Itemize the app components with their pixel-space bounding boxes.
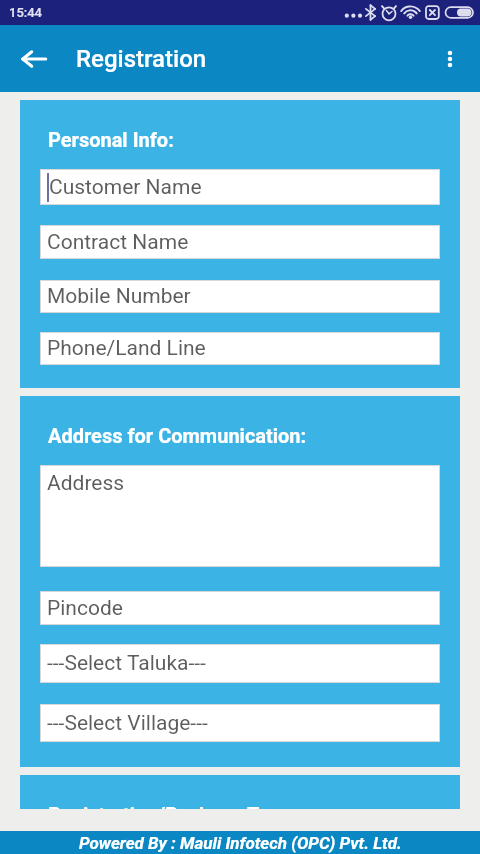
staticText: Personal Info: bbox=[48, 128, 174, 151]
button[interactable]: Address bbox=[40, 465, 440, 567]
staticText: Contract Name bbox=[47, 230, 189, 255]
staticText: Powered By : Mauli Infotech (OPC) Pvt. L… bbox=[79, 833, 402, 853]
staticText: Registration bbox=[76, 45, 207, 73]
button[interactable]: ---Select Taluka--- bbox=[40, 644, 440, 683]
button[interactable]: Phone/Land Line bbox=[40, 332, 440, 365]
staticText: Phone/Land Line bbox=[47, 336, 206, 361]
button[interactable]: Customer Name bbox=[40, 169, 440, 205]
staticText: ---Select Village--- bbox=[47, 711, 208, 736]
staticText: Registration/Package Type: bbox=[48, 803, 297, 809]
staticText: ---Select Taluka--- bbox=[47, 651, 206, 676]
button[interactable]: Mobile Number bbox=[40, 280, 440, 313]
staticText: Mobile Number bbox=[47, 284, 191, 309]
staticText: Address bbox=[47, 471, 125, 496]
staticText: Pincode bbox=[47, 596, 123, 621]
button[interactable]: Contract Name bbox=[40, 225, 440, 259]
button[interactable]: Pincode bbox=[40, 591, 440, 625]
staticText: Customer Name bbox=[49, 175, 202, 200]
staticText: 15:44 bbox=[9, 5, 42, 20]
button[interactable]: ---Select Village--- bbox=[40, 704, 440, 742]
button[interactable]: Back bbox=[12, 37, 56, 81]
button[interactable]: More options bbox=[428, 37, 472, 81]
staticText: Address for Communication: bbox=[48, 424, 307, 447]
